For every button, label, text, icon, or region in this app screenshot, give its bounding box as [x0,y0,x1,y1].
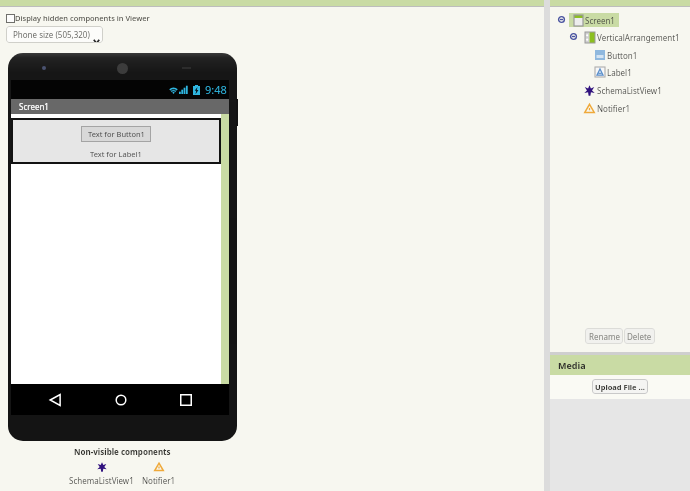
button[interactable]: Rename [585,328,623,344]
staticText: Non-visible components [74,446,171,457]
staticText: Notifier1 [597,103,631,114]
staticText: 9:48 [205,82,227,97]
button[interactable]: SchemaListView1 [69,462,134,486]
staticText: Label1 [607,67,632,78]
staticText: Display hidden components in Viewer [15,13,150,23]
button[interactable]: Display hidden components in Viewer [6,13,150,23]
button[interactable]: Screen1 [569,13,619,27]
staticText: Phone size (505,320) [13,29,90,40]
staticText: Screen1 [19,101,49,112]
button[interactable]: Notifier1 [142,462,176,486]
staticText: Text for Button1 [88,129,145,139]
button[interactable]: Label1 [590,65,636,79]
button[interactable]: Recents [178,391,194,409]
button[interactable]: SchemaListView1 [579,83,666,97]
staticText: Notifier1 [142,475,176,486]
button[interactable]: Home [113,391,129,409]
button[interactable]: Phone size (505,320) [6,26,103,43]
button[interactable]: Text for Button1 [81,126,151,142]
staticText: Text for Label1 [90,149,142,159]
button[interactable]: Button1 [590,48,642,62]
staticText: VerticalArrangement1 [597,32,680,43]
staticText: Upload File ... [595,382,645,392]
staticText: Delete [627,331,652,342]
button[interactable]: Back [47,391,63,409]
staticText: Screen1 [585,15,615,26]
staticText: Media [558,359,586,371]
button[interactable]: Notifier1 [579,101,635,115]
button[interactable]: Text for Button1 [13,120,219,162]
staticText: SchemaListView1 [597,85,662,96]
button[interactable]: VerticalArrangement1 [580,30,684,44]
staticText: Rename [589,331,620,342]
staticText: Button1 [607,50,638,61]
button[interactable]: Delete [624,328,655,344]
staticText: SchemaListView1 [69,475,134,486]
button[interactable]: Upload File ... [592,379,648,394]
